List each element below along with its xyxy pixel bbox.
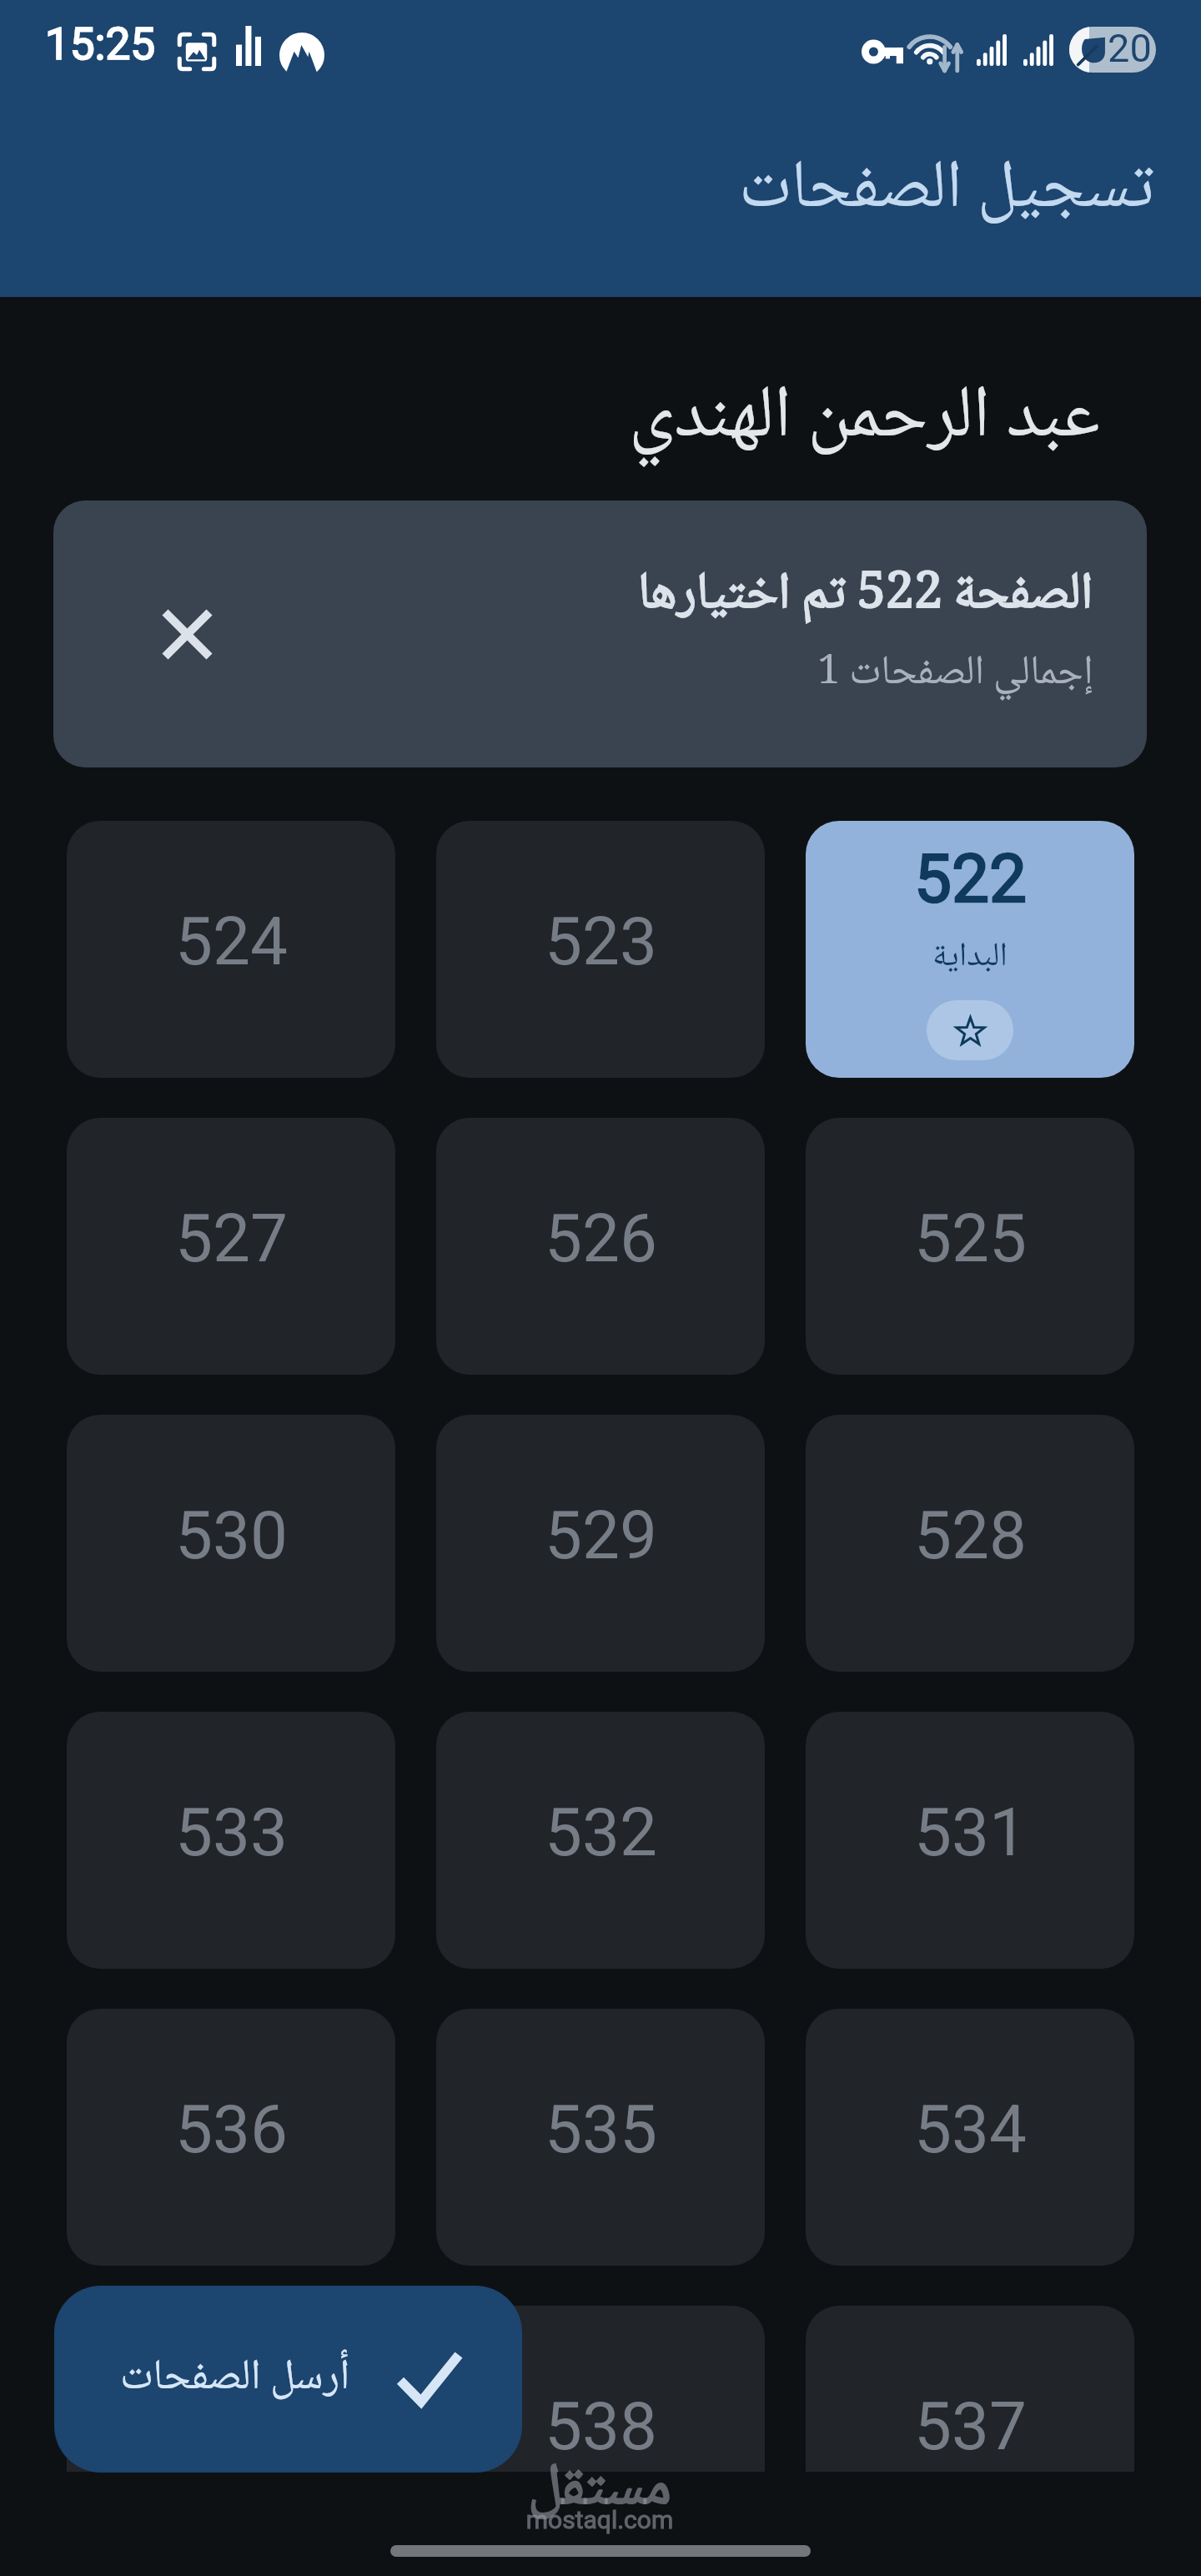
staticText: 531 (914, 1794, 1027, 1872)
button[interactable]: 532 (436, 1712, 765, 1969)
button[interactable]: 530 (67, 1415, 395, 1672)
staticText: عبد الرحمن الهندي (629, 357, 1100, 482)
staticText: 15:25 (45, 18, 155, 70)
button[interactable]: 528 (806, 1415, 1134, 1672)
button[interactable]: 534 (806, 2009, 1134, 2266)
button[interactable]: 524 (67, 821, 395, 1078)
button[interactable]: 526 (436, 1118, 765, 1375)
staticText: 539 (175, 2387, 288, 2466)
staticText: 530 (175, 1497, 288, 1575)
staticText: 536 (175, 2090, 288, 2169)
staticText: 537 (914, 2387, 1027, 2466)
button[interactable]: أرسل الصفحات (54, 2286, 522, 2473)
staticText: 532 (545, 1794, 657, 1872)
staticText: 525 (914, 1200, 1027, 1278)
button[interactable]: Dismiss (53, 501, 320, 767)
other: Screenshot (177, 32, 217, 72)
staticText: mostaql.com (475, 2505, 725, 2534)
button[interactable]: Dismiss (53, 501, 1147, 767)
staticText: 20 (1108, 27, 1152, 71)
staticText: مستقل (475, 2441, 725, 2540)
staticText: 522 (914, 840, 1027, 918)
staticText: 538 (545, 2387, 657, 2466)
staticText: 527 (175, 1200, 288, 1278)
button[interactable]: 537 (806, 2306, 1134, 2472)
other: VPN (279, 33, 324, 78)
button[interactable]: 522 (806, 821, 1134, 1078)
staticText: البداية (932, 929, 1008, 986)
staticText: تسجيل الصفحات (739, 133, 1155, 249)
button[interactable]: 531 (806, 1712, 1134, 1969)
button[interactable]: 538 (436, 2306, 765, 2472)
staticText: 533 (175, 1794, 288, 1872)
staticText: 534 (914, 2090, 1027, 2169)
staticText: 528 (914, 1497, 1027, 1575)
other: VPN key (862, 32, 903, 72)
button[interactable]: 535 (436, 2009, 765, 2266)
button[interactable]: 529 (436, 1415, 765, 1672)
staticText: 526 (545, 1200, 657, 1278)
button[interactable]: Bookmark (927, 1000, 1013, 1060)
button[interactable]: 536 (67, 2009, 395, 2266)
staticText: أرسل الصفحات (120, 2342, 350, 2415)
staticText: 523 (545, 903, 657, 981)
staticText: الصفحة 522 تم اختيارها (638, 553, 1093, 640)
staticText: 535 (545, 2090, 657, 2169)
button[interactable]: 523 (436, 821, 765, 1078)
button[interactable]: 525 (806, 1118, 1134, 1375)
staticText: 524 (175, 903, 288, 981)
button[interactable]: 539 (67, 2306, 395, 2472)
button[interactable]: 533 (67, 1712, 395, 1969)
staticText: 529 (545, 1497, 657, 1575)
staticText: إجمالي الصفحات 1 (817, 640, 1093, 709)
button[interactable]: 527 (67, 1118, 395, 1375)
